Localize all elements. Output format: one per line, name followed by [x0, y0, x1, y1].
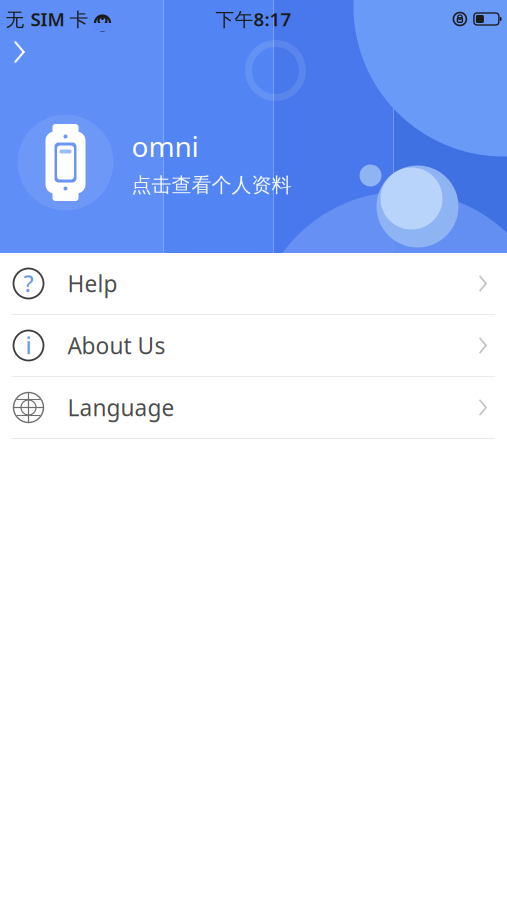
staticText: ?	[23, 268, 33, 298]
staticText: About Us	[67, 330, 165, 360]
staticText: Help	[67, 268, 117, 298]
staticText: Language	[67, 392, 174, 422]
button[interactable]: Language	[0, 377, 507, 438]
button[interactable]: ?	[0, 253, 507, 314]
staticText: i	[25, 330, 31, 360]
staticText: omni	[131, 128, 198, 165]
button[interactable]: omni	[0, 107, 507, 217]
staticText: 无 SIM 卡	[5, 7, 88, 31]
staticText: 点击查看个人资料	[131, 173, 291, 197]
staticText: 下午8:17	[215, 7, 291, 31]
button[interactable]: i	[0, 315, 507, 376]
button[interactable]: Back	[0, 32, 39, 72]
